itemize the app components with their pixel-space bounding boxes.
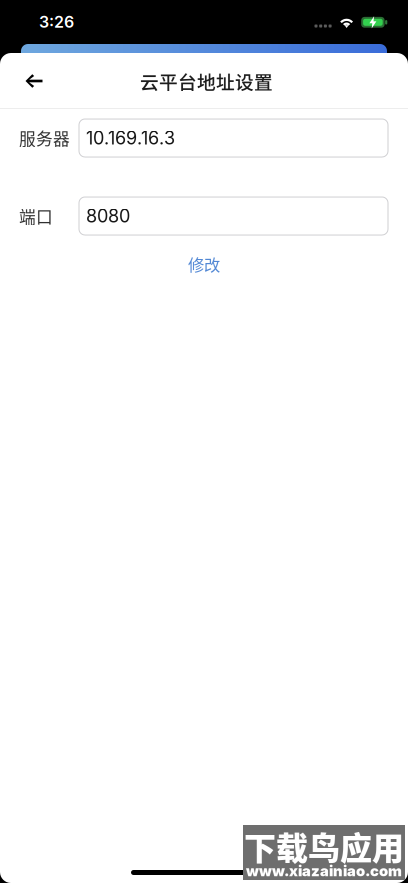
button[interactable]: Back bbox=[12, 59, 56, 103]
button[interactable]: 修改 bbox=[159, 251, 249, 277]
staticText: 修改 bbox=[188, 252, 220, 276]
staticText: 服务器 bbox=[19, 126, 70, 150]
staticText: 3:26 bbox=[39, 12, 74, 32]
button[interactable]: 10.169.16.3 bbox=[79, 119, 388, 157]
staticText: www.xiazainiao.com bbox=[246, 862, 402, 880]
staticText: 8080 bbox=[86, 205, 130, 227]
staticText: 端口 bbox=[19, 204, 53, 228]
button[interactable]: 8080 bbox=[79, 197, 388, 235]
staticText: 云平台地址设置 bbox=[140, 67, 273, 94]
staticText: 10.169.16.3 bbox=[86, 127, 175, 149]
staticText: 下载鸟应用 bbox=[244, 823, 404, 869]
